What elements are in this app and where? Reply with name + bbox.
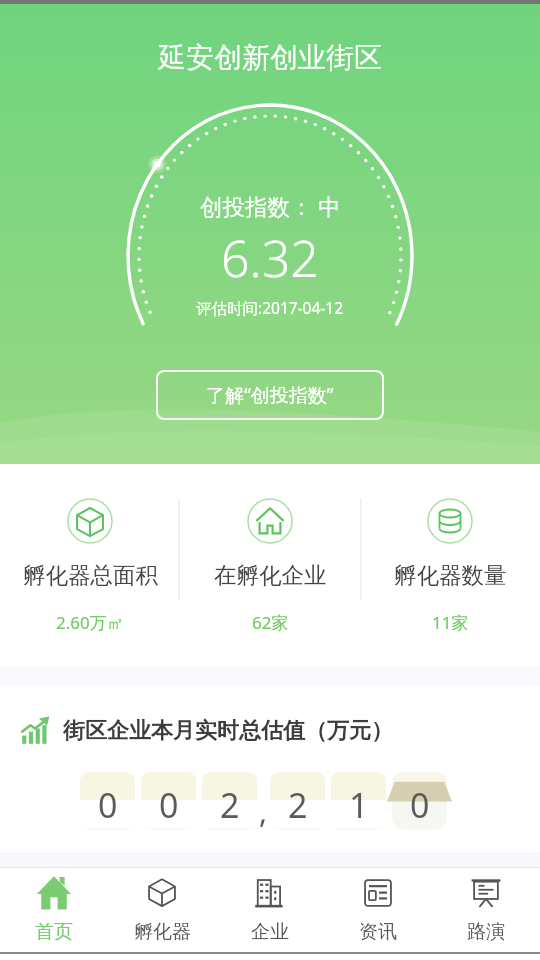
button[interactable]: 在孵化企业 [180,464,360,634]
button[interactable]: 了解“创投指数” [156,370,384,420]
staticText: 2 [220,782,240,828]
staticText: 2 [288,782,308,828]
staticText: 孵化器 [134,920,191,944]
staticText: 2.60万㎡ [56,611,124,634]
staticText: 街区企业本月实时总估值（万元） [63,717,393,745]
staticText: 延安创新创业街区 [158,40,382,75]
staticText: 1 [349,782,369,828]
staticText: 孵化器总面积 [23,561,158,589]
button[interactable]: 孵化器总面积 [0,464,180,634]
staticText: 在孵化企业 [214,561,327,589]
button[interactable]: News [324,868,432,952]
staticText: 11家 [432,611,469,634]
button[interactable]: Home [0,868,108,952]
button[interactable]: 孵化器数量 [360,464,540,634]
button[interactable]: Roadshow [432,868,540,952]
button[interactable]: Incubator [108,868,216,952]
staticText: 首页 [35,920,73,944]
staticText: 评估时间:2017-04-12 [196,297,344,318]
staticText: 创投指数： 中 [200,191,341,222]
button[interactable]: Enterprises [216,868,324,952]
staticText: 资讯 [359,920,397,944]
staticText: 0 [410,782,430,828]
staticText: , [259,791,268,832]
staticText: 路演 [467,920,505,944]
staticText: 了解“创投指数” [206,382,334,408]
staticText: 0 [98,782,118,828]
staticText: 62家 [252,611,289,634]
staticText: 孵化器数量 [394,561,507,589]
staticText: 6.32 [221,224,319,292]
staticText: 0 [159,782,179,828]
staticText: 企业 [251,920,289,944]
